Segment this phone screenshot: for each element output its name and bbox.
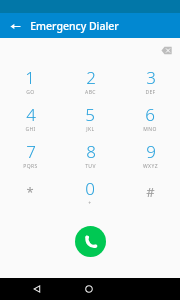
staticText: 4 [26,103,36,126]
staticText: 3 [146,66,156,89]
button[interactable]: Back [6,17,24,35]
staticText: DEF [145,89,156,96]
button[interactable]: 8 [60,136,120,173]
button[interactable]: 2 [60,62,120,99]
button[interactable]: 1 [0,62,60,99]
staticText: 7 [26,140,36,163]
staticText: PQRS [23,163,38,170]
staticText: 8 [86,140,96,163]
staticText: 1 [25,66,35,89]
button[interactable]: 9 [120,136,180,173]
staticText: # [146,183,155,201]
button[interactable]: 7 [0,136,60,173]
staticText: ABC [85,89,96,96]
staticText: Emergency Dialer [30,19,119,33]
staticText: JKL [86,126,95,133]
button[interactable]: Home [79,279,99,299]
staticText: 0 [85,177,95,200]
staticText: TUV [85,163,96,170]
staticText: + [88,200,92,207]
staticText: GHI [25,126,36,133]
staticText: GO [26,89,35,96]
button[interactable]: 3 [120,62,180,99]
staticText: 5 [85,103,95,126]
button[interactable]: # [120,173,180,210]
button[interactable]: 4 [0,99,60,136]
button[interactable]: 0 [60,173,120,210]
staticText: 9 [146,140,156,163]
staticText: 2 [86,66,96,89]
button[interactable]: Back [27,279,47,299]
button[interactable]: Delete [158,42,174,58]
staticText: WXYZ [143,163,158,170]
staticText: MNO [143,126,157,133]
button[interactable]: 5 [60,99,120,136]
button[interactable]: Call [75,226,106,257]
button[interactable]: 6 [120,99,180,136]
button[interactable]: * [0,173,60,210]
staticText: 6 [145,103,155,126]
staticText: * [26,183,34,201]
